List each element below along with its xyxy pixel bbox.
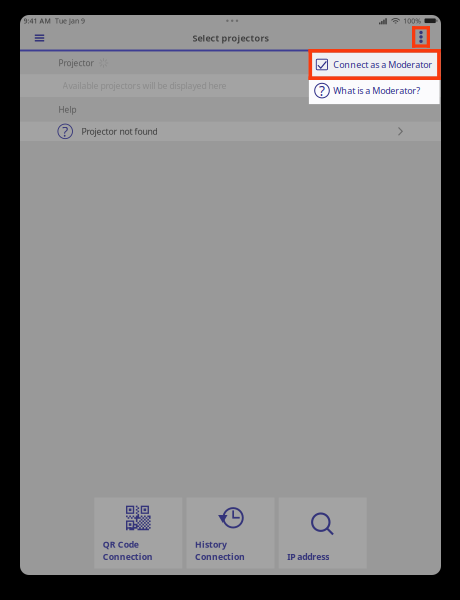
staticText: ? <box>319 81 325 100</box>
staticText: Help <box>58 104 76 115</box>
staticText: Connect as a Moderator <box>333 58 432 71</box>
button[interactable]: ? <box>20 122 441 141</box>
staticText: 100% <box>403 16 421 25</box>
staticText: Available projectors will be displayed h… <box>62 80 226 92</box>
button[interactable]: ? <box>309 77 440 104</box>
staticText: Projector not found <box>81 125 157 137</box>
staticText: History <box>195 538 227 550</box>
staticText: Connection <box>195 551 245 562</box>
staticText: QR Code <box>103 538 139 550</box>
button[interactable]: QR Code <box>94 497 182 568</box>
staticText: 9:41 AM <box>23 16 50 25</box>
staticText: IP address <box>287 551 329 562</box>
button[interactable]: More options <box>412 27 430 49</box>
button[interactable]: History <box>186 497 274 568</box>
staticText: Connection <box>103 551 153 562</box>
staticText: Select projectors <box>192 32 268 44</box>
staticText: Projector <box>58 57 93 69</box>
staticText: What is a Moderator? <box>333 84 420 97</box>
button[interactable]: Connect as a Moderator <box>309 53 440 76</box>
button[interactable]: Menu <box>25 27 54 49</box>
staticText: ? <box>62 122 68 141</box>
staticText: Tue Jan 9 <box>55 16 85 25</box>
button[interactable]: IP address <box>279 497 367 568</box>
